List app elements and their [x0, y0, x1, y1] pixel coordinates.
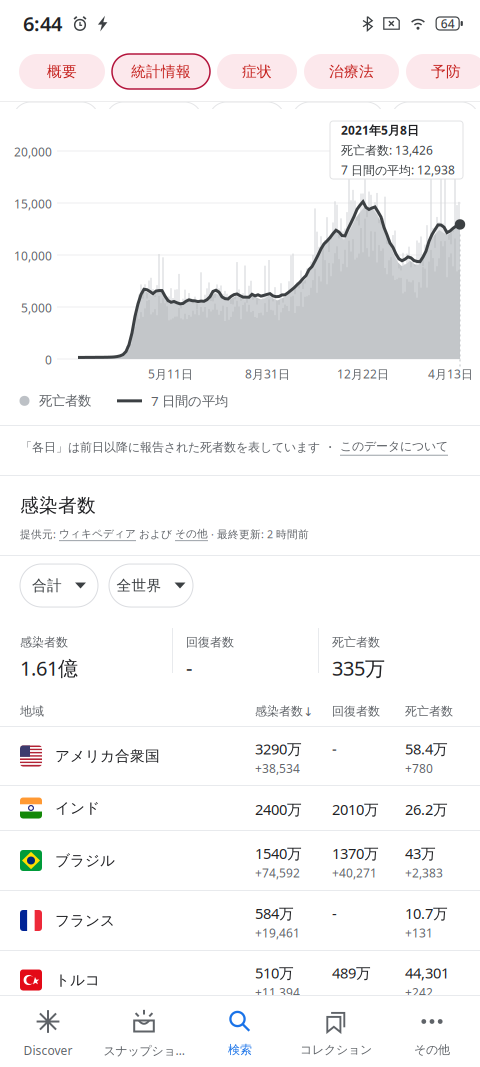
staticText: インド [55, 799, 100, 817]
staticText: +11,394 [255, 984, 300, 1000]
staticText: 死亡者数 [405, 704, 453, 719]
staticText: 統計情報 [131, 62, 191, 80]
staticText: コレクション [300, 1042, 372, 1057]
staticText: 12月22日 [337, 366, 389, 382]
staticText: +19,461 [255, 925, 300, 941]
button[interactable]: 合計 [20, 564, 98, 607]
staticText: 4月13日 [428, 366, 473, 382]
staticText: 10,000 [14, 248, 52, 264]
staticText: 回復者数 [186, 635, 234, 650]
staticText: Discover [23, 1042, 72, 1058]
staticText: 感染者数↓ [255, 704, 313, 719]
button[interactable]: ブラジル [0, 831, 480, 891]
staticText: 15,000 [14, 196, 52, 212]
staticText: 合計 [32, 576, 62, 594]
button[interactable]: Discover [0, 995, 96, 1067]
staticText: 3290万 [255, 739, 302, 758]
staticText: 予防 [431, 62, 461, 80]
staticText: 7 日間の平均 [151, 392, 228, 410]
button[interactable]: 概要 [19, 54, 105, 89]
staticText: その他 [414, 1042, 450, 1057]
staticText: 5,000 [21, 300, 52, 316]
staticText: +40,271 [332, 865, 377, 881]
staticText: 64 [441, 15, 455, 31]
staticText: 地域 [20, 704, 44, 719]
staticText: 0 [45, 352, 52, 368]
staticText: ブラジル [55, 851, 115, 869]
staticText: 26.2万 [405, 799, 448, 819]
staticText: 感染者数 [20, 494, 96, 517]
staticText: 489万 [332, 963, 371, 982]
button[interactable]: トルコ [0, 951, 480, 1010]
staticText: 死亡者数: 13,426 [341, 142, 433, 158]
staticText: 44,301 [405, 963, 449, 982]
staticText: 10.7万 [405, 903, 448, 923]
staticText: · 最終更新: 2 時間前 [208, 527, 309, 541]
staticText: スナップショ… [103, 1042, 184, 1058]
staticText: +74,592 [255, 865, 300, 881]
button[interactable]: アメリカ合衆国 [0, 727, 480, 786]
staticText: トルコ [55, 971, 100, 989]
staticText: 58.4万 [405, 739, 448, 758]
staticText: +780 [405, 760, 433, 776]
staticText: 検索 [228, 1042, 252, 1057]
staticText: 8月31日 [245, 366, 290, 382]
button[interactable]: スナップショ… [96, 995, 192, 1067]
staticText: 20,000 [14, 144, 52, 160]
staticText: 死亡者数 [39, 393, 91, 409]
button[interactable]: 統計情報 [112, 54, 210, 89]
staticText: 提供元: [20, 527, 59, 541]
staticText: 感染者数 [20, 635, 68, 650]
staticText: 2010万 [332, 799, 379, 819]
staticText: 7 日間の平均: 12,938 [341, 162, 455, 178]
staticText: 1.61億 [20, 655, 78, 681]
staticText: 1540万 [255, 843, 302, 863]
staticText: 335万 [332, 655, 385, 681]
staticText: 43万 [405, 843, 436, 863]
button[interactable]: 検索 [192, 995, 288, 1067]
staticText: - [332, 739, 337, 758]
button[interactable]: 症状 [217, 54, 297, 89]
staticText: 全世界 [116, 576, 161, 594]
staticText: +131 [405, 925, 433, 941]
staticText: 2021年5月8日 [341, 122, 419, 138]
staticText: - [332, 903, 337, 923]
button[interactable]: インド [0, 786, 480, 831]
staticText: 1370万 [332, 843, 379, 863]
staticText: 584万 [255, 903, 294, 923]
staticText: 2400万 [255, 799, 302, 819]
button[interactable]: このデータについて [340, 439, 448, 456]
staticText: 「各日」は前日以降に報告された死者数を表しています ・ [20, 440, 340, 455]
staticText: アメリカ合衆国 [55, 747, 160, 765]
staticText: ウィキペディア [59, 527, 136, 540]
button[interactable]: 全世界 [109, 564, 193, 607]
staticText: +2,383 [405, 865, 443, 881]
staticText: このデータについて [340, 439, 448, 454]
button[interactable]: コレクション [288, 995, 384, 1067]
staticText: - [186, 655, 192, 681]
staticText: 6:44 [23, 10, 62, 37]
staticText: 510万 [255, 963, 294, 982]
staticText: フランス [55, 911, 115, 929]
staticText: 症状 [242, 62, 272, 80]
button[interactable]: 治療法 [304, 54, 399, 89]
staticText: 5月11日 [148, 366, 193, 382]
staticText: +38,534 [255, 760, 300, 776]
button[interactable]: その他 [175, 527, 208, 541]
staticText: 回復者数 [332, 704, 380, 719]
staticText: 概要 [47, 62, 77, 80]
staticText: 死亡者数 [332, 635, 380, 650]
staticText: 治療法 [329, 62, 374, 80]
button[interactable]: フランス [0, 891, 480, 951]
staticText: および [136, 527, 175, 541]
button[interactable]: その他 [384, 995, 480, 1067]
button[interactable]: 予防 [406, 54, 480, 89]
staticText: その他 [175, 527, 208, 540]
button[interactable]: ウィキペディア [59, 527, 136, 541]
staticText: +242 [405, 984, 433, 1000]
